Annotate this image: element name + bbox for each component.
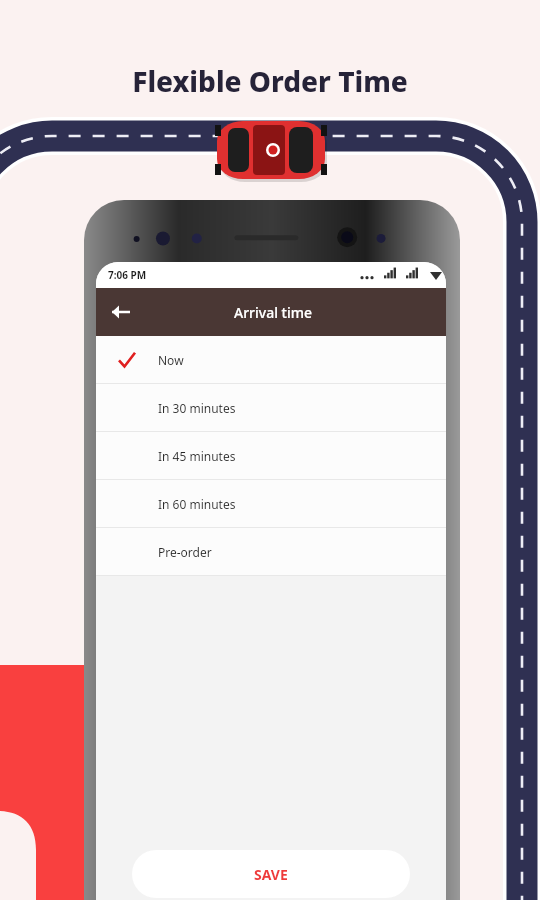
button[interactable]: Back <box>96 288 144 336</box>
button[interactable]: Back <box>96 288 446 336</box>
staticText: Pre-order <box>158 544 212 560</box>
button[interactable]: Now <box>96 336 446 383</box>
button[interactable]: In 45 minutes <box>96 432 446 479</box>
button[interactable]: SAVE <box>132 850 410 898</box>
button[interactable]: Pre-order <box>96 528 446 575</box>
staticText: SAVE <box>254 865 288 884</box>
staticText: Now <box>158 352 184 368</box>
staticText: Flexible Order Time <box>132 62 408 100</box>
button[interactable]: In 60 minutes <box>96 480 446 527</box>
staticText: In 60 minutes <box>158 496 236 512</box>
staticText: 7:06 PM <box>108 268 147 282</box>
staticText: In 30 minutes <box>158 400 236 416</box>
staticText: In 45 minutes <box>158 448 236 464</box>
staticText: Arrival time <box>234 303 313 322</box>
button[interactable]: In 30 minutes <box>96 384 446 431</box>
